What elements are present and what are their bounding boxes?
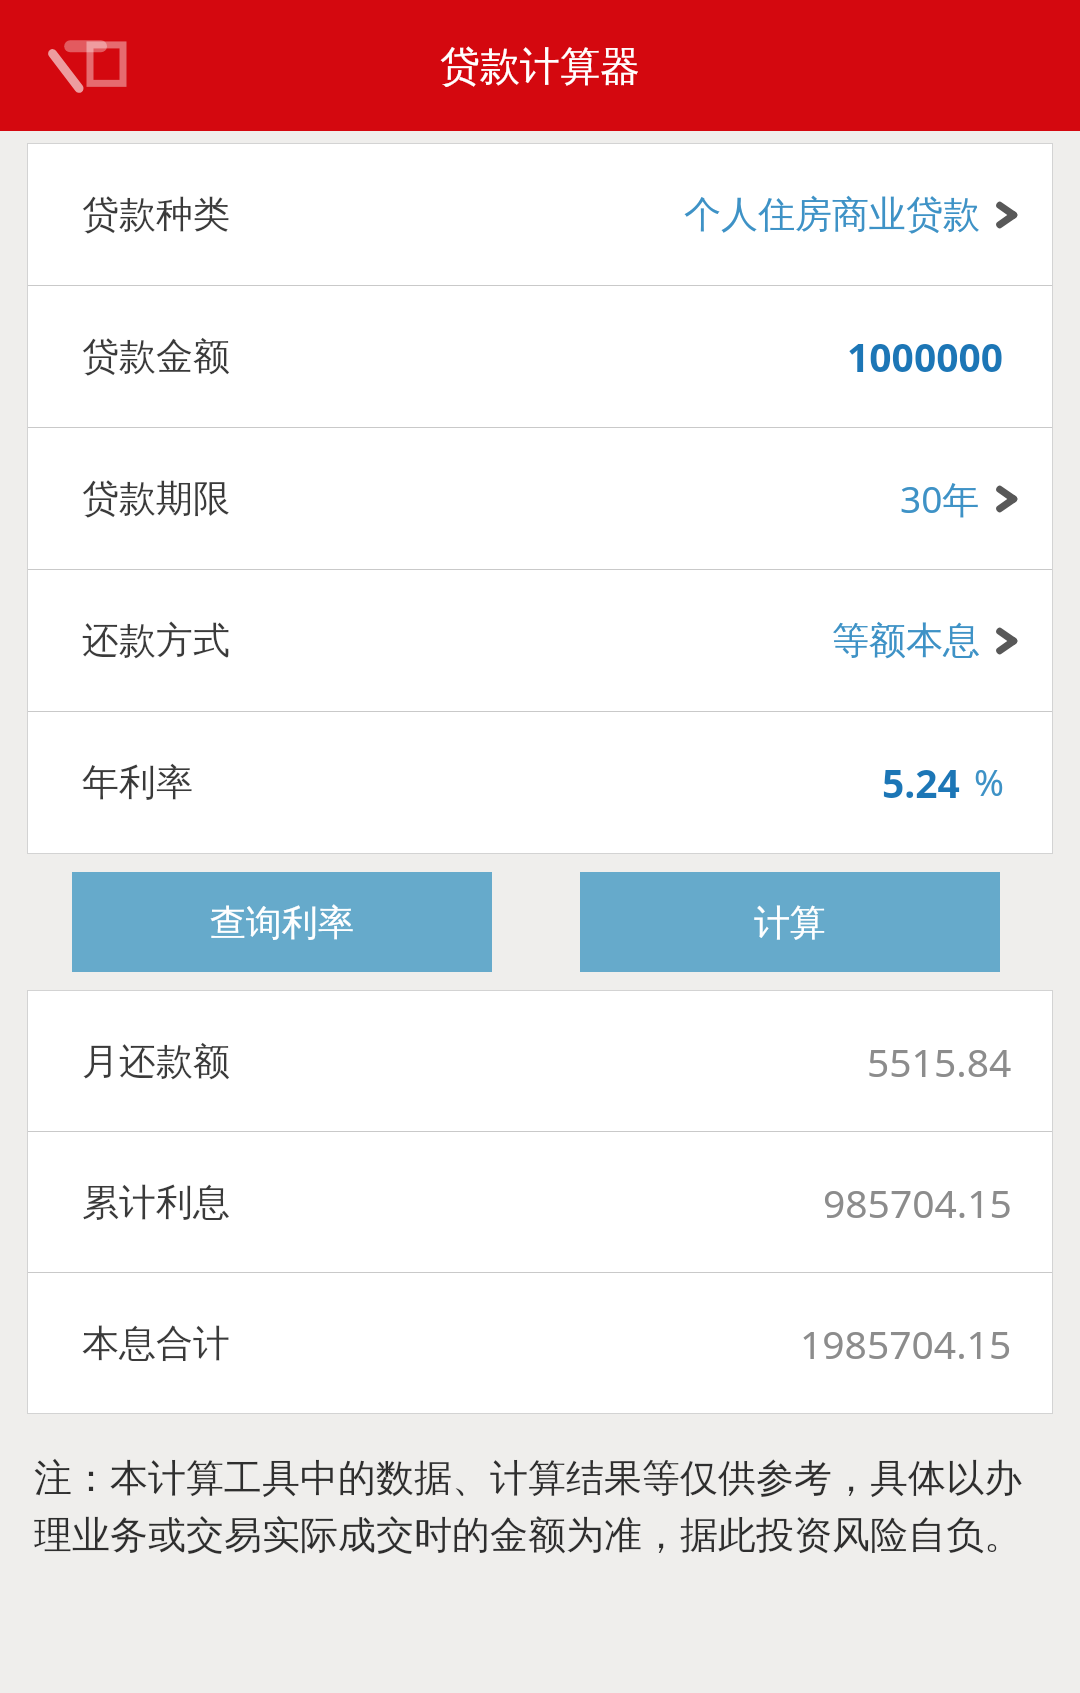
- staticText: 还款方式: [82, 617, 230, 664]
- button[interactable]: 还款方式: [28, 570, 1052, 711]
- staticText: 5515.84: [867, 1035, 1012, 1088]
- staticText: 年利率: [82, 759, 193, 806]
- button[interactable]: 年利率: [28, 712, 1052, 853]
- button[interactable]: 贷款种类: [28, 144, 1052, 285]
- staticText: 贷款种类: [82, 191, 230, 238]
- staticText: 1000000: [847, 330, 1004, 383]
- staticText: 本息合计: [82, 1320, 230, 1367]
- staticText: 月还款额: [82, 1038, 230, 1085]
- staticText: 985704.15: [823, 1176, 1012, 1229]
- button[interactable]: 计算: [580, 872, 1000, 972]
- button[interactable]: 贷款金额: [28, 286, 1052, 427]
- staticText: 1985704.15: [800, 1317, 1012, 1370]
- staticText: 贷款金额: [82, 333, 230, 380]
- staticText: 累计利息: [82, 1179, 230, 1226]
- button[interactable]: Back: [46, 35, 156, 97]
- staticText: 30年: [900, 473, 980, 524]
- staticText: 5.24: [882, 756, 960, 809]
- staticText: 等额本息: [832, 617, 980, 664]
- staticText: %: [974, 758, 1004, 807]
- staticText: 计算: [754, 900, 826, 945]
- staticText: 贷款期限: [82, 475, 230, 522]
- button[interactable]: 贷款期限: [28, 428, 1052, 569]
- button[interactable]: 查询利率: [72, 872, 492, 972]
- staticText: 注：本计算工具中的数据、计算结果等仅供参考，具体以办理业务或交易实际成交时的金额…: [34, 1454, 1046, 1560]
- staticText: 贷款计算器: [440, 41, 640, 91]
- staticText: 个人住房商业贷款: [684, 191, 980, 238]
- staticText: 查询利率: [210, 900, 354, 945]
